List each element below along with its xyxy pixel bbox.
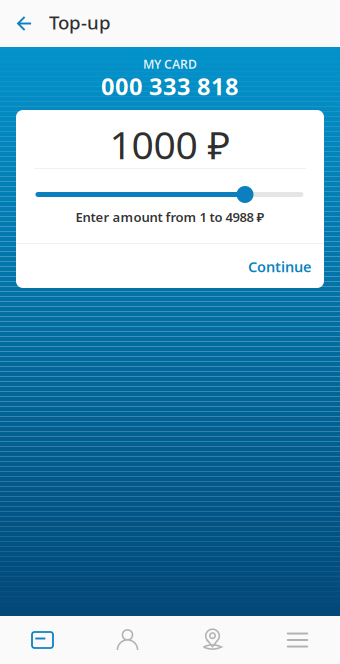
staticText: Continue [248, 257, 312, 276]
button[interactable]: Places [170, 616, 255, 664]
button[interactable]: Profile [85, 616, 170, 664]
button[interactable]: Cards [0, 616, 85, 664]
staticText: 000 333 818 [101, 70, 239, 102]
button[interactable]: Menu [255, 616, 340, 664]
button[interactable]: Back [4, 0, 44, 47]
staticText: MY CARD [143, 56, 197, 72]
staticText: Top-up [49, 10, 111, 35]
button[interactable]: Continue [216, 244, 326, 288]
staticText: Enter amount from 1 to 4988 ₽ [75, 208, 264, 226]
staticText: 1000 ₽ [109, 117, 230, 171]
